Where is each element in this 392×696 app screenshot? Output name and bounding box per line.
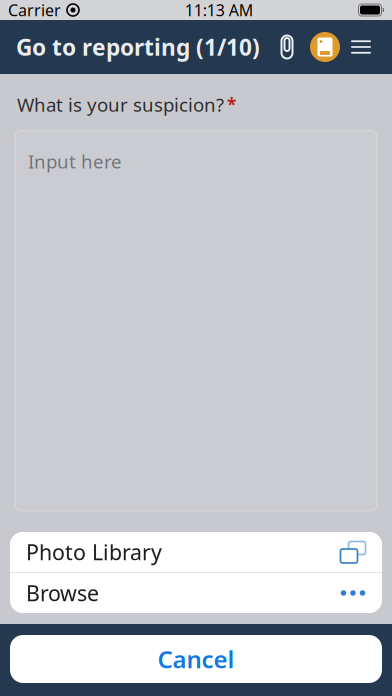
button[interactable]: Menu [346,25,376,69]
staticText: Input here [28,149,122,174]
staticText: Go to reporting (1/10) [16,32,260,62]
staticText: Cancel [157,643,234,675]
button[interactable]: Attach file [270,25,304,69]
staticText: 11:13 AM [185,0,254,21]
button[interactable]: Photo Library [10,532,382,572]
button[interactable]: Cancel [10,635,382,683]
staticText: Photo Library [26,538,162,566]
button[interactable]: Add photo [306,25,344,69]
staticText: * [227,93,236,116]
button[interactable]: Browse [10,573,382,613]
staticText: Carrier [8,0,61,21]
staticText: Browse [26,579,99,607]
staticText: What is your suspicion? [17,92,224,117]
